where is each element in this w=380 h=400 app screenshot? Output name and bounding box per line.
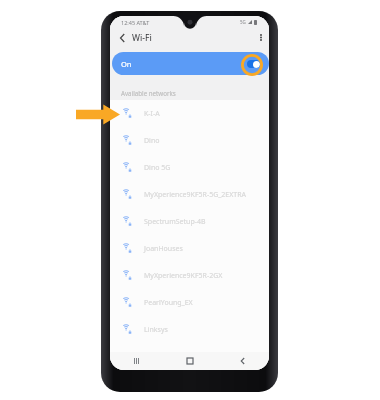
staticText: 12:45 AT&T: [121, 19, 150, 26]
staticText: K-I-A: [144, 109, 160, 119]
staticText: SpectrumSetup-4B: [144, 217, 206, 227]
staticText: Dino: [144, 136, 160, 146]
staticText: 5G: [240, 19, 246, 25]
staticText: PearlYoung_EX: [144, 298, 193, 308]
button[interactable]: MyXperience9KF5R-2GX: [110, 262, 269, 289]
staticText: JoanHouses: [144, 244, 183, 254]
button[interactable]: MyXperience9KF5R-5G_2EXTRA: [110, 181, 269, 208]
staticText: MyXperience9KF5R-2GX: [144, 271, 223, 281]
staticText: On: [121, 59, 132, 69]
button[interactable]: Recents: [110, 352, 163, 370]
button[interactable]: Dino 5G: [110, 154, 269, 181]
staticText: Available networks: [121, 89, 176, 97]
button[interactable]: JoanHouses: [110, 235, 269, 262]
button[interactable]: Back: [216, 352, 269, 370]
button[interactable]: Dino: [110, 127, 269, 154]
button[interactable]: More options: [252, 29, 269, 46]
staticText: Linksys: [144, 325, 168, 335]
button[interactable]: K-I-A: [110, 100, 269, 127]
button[interactable]: Linksys: [110, 316, 269, 343]
staticText: Dino 5G: [144, 163, 171, 173]
button[interactable]: Home: [163, 352, 216, 370]
button[interactable]: Back: [114, 29, 131, 46]
staticText: Wi-Fi: [132, 32, 152, 44]
button[interactable]: SpectrumSetup-4B: [110, 208, 269, 235]
staticText: MyXperience9KF5R-5G_2EXTRA: [144, 190, 247, 200]
button[interactable]: PearlYoung_EX: [110, 289, 269, 316]
button[interactable]: On: [112, 52, 269, 75]
